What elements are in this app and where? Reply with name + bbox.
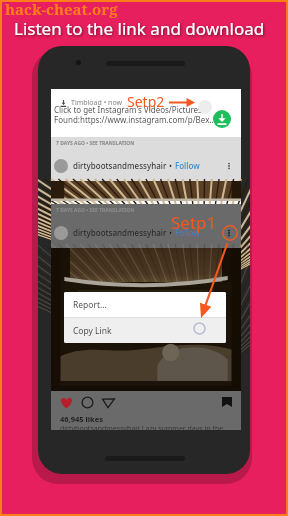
button[interactable]: Download (213, 110, 231, 128)
staticText: Report... (73, 299, 107, 311)
button[interactable]: Share (102, 396, 115, 409)
staticText: Follow (175, 227, 200, 238)
staticText: dirtybootsandmessyhair (73, 227, 167, 238)
staticText: Follow (175, 160, 200, 171)
button[interactable]: Copy Link (64, 318, 226, 343)
staticText: Found:https://www.instagram.com/p/Bex.. (54, 114, 214, 125)
button[interactable]: Report... (64, 292, 226, 317)
staticText: dirtybootsandmessyhair Lazy summer days … (60, 424, 250, 444)
button[interactable]: Save (222, 397, 232, 407)
button[interactable]: More options (224, 228, 234, 238)
button[interactable]: Ripple (198, 100, 212, 114)
button[interactable]: Comment (81, 396, 94, 409)
staticText: Setp1 (171, 211, 217, 234)
staticText: • (167, 160, 175, 171)
staticText: Timbload • now (71, 98, 123, 108)
staticText: • (167, 227, 175, 238)
staticText: 7 DAYS AGO • SEE TRANSLATION (56, 140, 135, 147)
staticText: 46,945 likes (60, 414, 103, 424)
staticText: Copy Link (73, 325, 112, 337)
staticText: Listen to the link and download (14, 17, 265, 40)
staticText: 7 DAYS AGO • SEE TRANSLATION (56, 207, 135, 214)
button[interactable]: More options (224, 161, 234, 171)
staticText: hack-cheat.org (5, 0, 118, 19)
button[interactable]: Like (60, 396, 73, 409)
staticText: Setp2 (127, 92, 165, 111)
staticText: Click to get Instagram's Videos/Pictures (54, 104, 202, 115)
staticText: dirtybootsandmessyhair (73, 160, 167, 171)
